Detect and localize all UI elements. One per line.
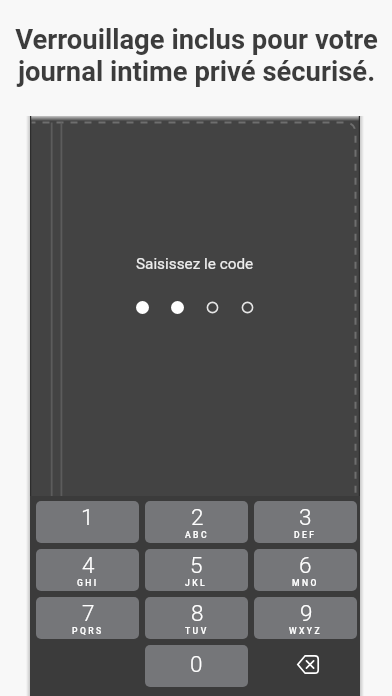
button[interactable]: 6 (254, 549, 357, 591)
staticText: MNO (292, 578, 319, 588)
button[interactable]: 0 (145, 645, 248, 687)
staticText: JKL (185, 578, 208, 588)
staticText: 5 (190, 552, 203, 578)
button[interactable]: 1 (36, 501, 139, 543)
staticText: 0 (190, 651, 203, 677)
button[interactable]: 8 (145, 597, 248, 639)
staticText: Saisissez le code (136, 255, 254, 273)
staticText: DEF (294, 530, 317, 540)
button[interactable]: 9 (254, 597, 357, 639)
staticText: 6 (299, 552, 312, 578)
staticText: 1 (81, 504, 94, 530)
button[interactable]: 5 (145, 549, 248, 591)
staticText: 4 (82, 552, 95, 578)
staticText: ABC (185, 530, 209, 540)
staticText: 9 (300, 600, 313, 626)
staticText: 7 (82, 600, 95, 626)
staticText: PQRS (72, 626, 104, 636)
staticText: 3 (299, 504, 312, 530)
button[interactable]: 7 (36, 597, 139, 639)
staticText: WXYZ (289, 626, 323, 636)
button[interactable]: 3 (254, 501, 357, 543)
staticText: TUV (185, 626, 209, 636)
button[interactable]: Backspace (254, 645, 357, 687)
staticText: 2 (191, 504, 204, 530)
staticText: GHI (77, 578, 99, 588)
button[interactable]: 2 (145, 501, 248, 543)
button[interactable]: 4 (36, 549, 139, 591)
staticText: 8 (191, 600, 204, 626)
staticText: Verrouillage inclus pour votre journal i… (15, 24, 378, 88)
